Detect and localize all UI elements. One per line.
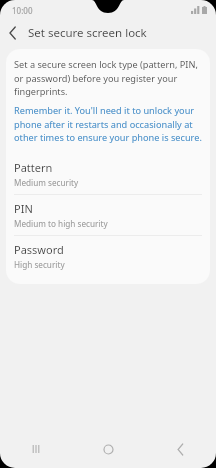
- button[interactable]: Back: [0, 20, 26, 45]
- button[interactable]: Home: [72, 430, 144, 468]
- staticText: Medium to high security: [14, 218, 108, 229]
- button[interactable]: Back: [144, 430, 216, 468]
- staticText: Medium security: [14, 177, 79, 188]
- staticText: Set secure screen lock: [28, 25, 147, 41]
- staticText: Pattern: [14, 160, 53, 175]
- button[interactable]: Password: [6, 236, 210, 276]
- staticText: Set a secure screen lock type (pattern, …: [14, 58, 202, 97]
- staticText: Remember it. You'll need it to unlock yo…: [14, 104, 202, 143]
- staticText: 10:00: [12, 5, 33, 16]
- staticText: Password: [14, 242, 64, 257]
- staticText: PIN: [14, 201, 33, 216]
- button[interactable]: Recents: [0, 430, 72, 468]
- staticText: High security: [14, 259, 65, 270]
- button[interactable]: Pattern: [6, 154, 210, 194]
- button[interactable]: PIN: [6, 195, 210, 235]
